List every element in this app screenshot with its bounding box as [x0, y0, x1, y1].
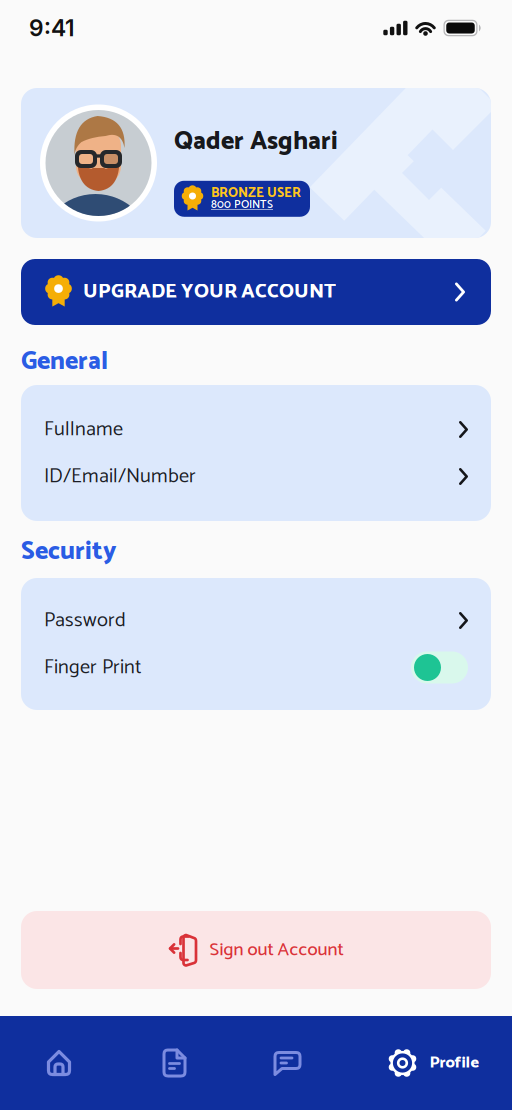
button[interactable]: UPGRADE YOUR ACCOUNT: [21, 259, 491, 325]
button[interactable]: ID/Email/Number: [21, 453, 491, 500]
staticText: BRONZE USER: [211, 182, 301, 204]
staticText: Fullname: [44, 413, 123, 446]
button[interactable]: Reports: [118, 1016, 231, 1110]
staticText: UPGRADE YOUR ACCOUNT: [83, 276, 336, 308]
staticText: Security: [21, 531, 117, 573]
staticText: Profile: [429, 1050, 479, 1076]
staticText: Sign out Account: [209, 935, 343, 965]
staticText: Qader Asghari: [174, 121, 338, 163]
staticText: 9:41: [29, 14, 75, 42]
staticText: General: [21, 341, 108, 383]
button[interactable]: Sign out Account: [21, 911, 491, 989]
staticText: 800 POINTS: [211, 195, 273, 214]
button[interactable]: Fullname: [21, 406, 491, 453]
button[interactable]: Home: [0, 1016, 118, 1110]
button[interactable]: Messages: [231, 1016, 344, 1110]
button[interactable]: Profile: [344, 1016, 512, 1110]
button[interactable]: Finger Print: [21, 644, 491, 691]
button[interactable]: Password: [21, 597, 491, 644]
staticText: Password: [44, 604, 126, 637]
staticText: ID/Email/Number: [44, 460, 196, 493]
staticText: Finger Print: [44, 651, 141, 684]
